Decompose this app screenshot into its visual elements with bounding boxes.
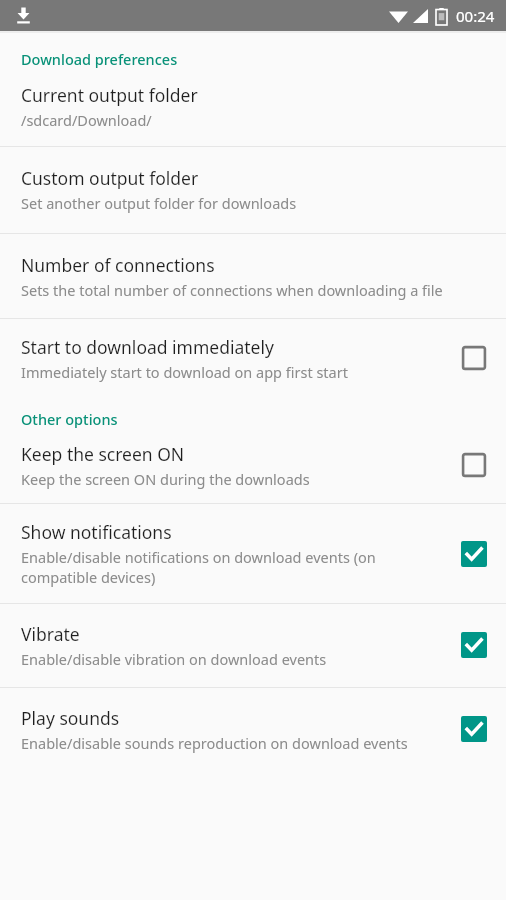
button[interactable]: Start to download immediately xyxy=(0,319,506,397)
button[interactable]: Number of connections xyxy=(0,234,506,318)
staticText: 00:24 xyxy=(456,6,495,26)
staticText: Immediately start to download on app fir… xyxy=(21,362,348,382)
staticText: /sdcard/Download/ xyxy=(21,110,152,130)
button[interactable]: Vibrate xyxy=(0,604,506,687)
button[interactable]: Play sounds xyxy=(0,688,506,771)
staticText: Other options xyxy=(21,409,118,429)
staticText: Keep the screen ON xyxy=(21,442,185,466)
button[interactable]: Current output folder xyxy=(0,75,506,146)
other: Downloads xyxy=(15,7,32,24)
button[interactable]: Custom output folder xyxy=(0,147,506,233)
staticText: Play sounds xyxy=(21,706,120,730)
staticText: Enable/disable sounds reproduction on do… xyxy=(21,733,408,753)
button[interactable]: Keep the screen ON xyxy=(0,435,506,503)
staticText: Keep the screen ON during the downloads xyxy=(21,469,310,489)
staticText: Download preferences xyxy=(21,49,178,69)
staticText: Vibrate xyxy=(21,622,80,646)
staticText: Enable/disable vibration on download eve… xyxy=(21,649,327,669)
staticText: Enable/disable notifications on download… xyxy=(21,547,446,587)
staticText: Show notifications xyxy=(21,520,172,544)
staticText: Number of connections xyxy=(21,253,215,277)
button[interactable]: Show notifications xyxy=(0,504,506,603)
staticText: Current output folder xyxy=(21,83,198,107)
staticText: Custom output folder xyxy=(21,166,199,190)
staticText: Sets the total number of connections whe… xyxy=(21,280,443,300)
staticText: Set another output folder for downloads xyxy=(21,193,297,213)
staticText: Start to download immediately xyxy=(21,335,274,359)
